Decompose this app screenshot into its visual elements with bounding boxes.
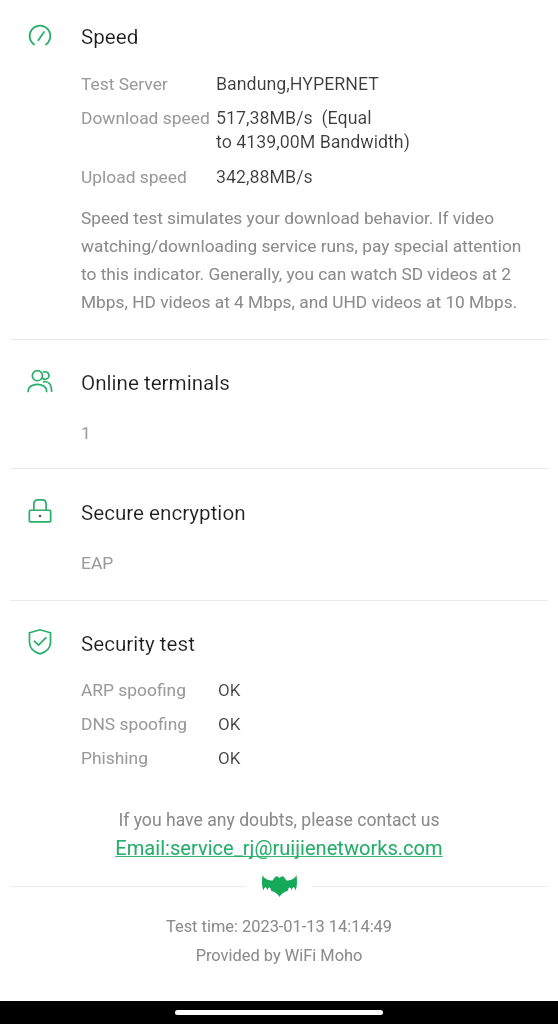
staticText: Download speed	[81, 108, 210, 128]
staticText: Online terminals	[81, 371, 230, 395]
button[interactable]: Speed	[0, 11, 558, 55]
staticText: Bandung,HYPERNET	[216, 73, 379, 94]
staticText: OK	[218, 748, 241, 768]
button[interactable]: Online terminals	[0, 357, 558, 401]
staticText: 1	[81, 423, 91, 443]
staticText: Security test	[81, 632, 195, 656]
staticText: OK	[218, 714, 241, 734]
staticText: ARP spoofing	[81, 680, 186, 700]
staticText: 517,38MB/s (Equal to 4139,00M Bandwidth)	[216, 107, 526, 153]
staticText: If you have any doubts, please contact u…	[0, 810, 558, 831]
staticText: Test Server	[81, 74, 168, 94]
button[interactable]	[100, 836, 458, 864]
staticText: OK	[218, 680, 241, 700]
staticText: Speed test simulates your download behav…	[81, 208, 531, 313]
staticText: Test time: 2023-01-13 14:14:49	[0, 917, 558, 936]
staticText: Phishing	[81, 748, 148, 768]
staticText: Upload speed	[81, 167, 187, 187]
staticText: DNS spoofing	[81, 714, 188, 734]
staticText: Speed	[81, 25, 139, 49]
staticText: 342,88MB/s	[216, 166, 313, 187]
staticText: EAP	[81, 553, 114, 573]
staticText: Provided by WiFi Moho	[0, 946, 558, 965]
staticText: Secure encryption	[81, 501, 246, 525]
button[interactable]: Security test	[0, 618, 558, 662]
staticText: Email:service_rj@ruijienetworks.com	[0, 836, 558, 860]
button[interactable]: Secure encryption	[0, 487, 558, 531]
